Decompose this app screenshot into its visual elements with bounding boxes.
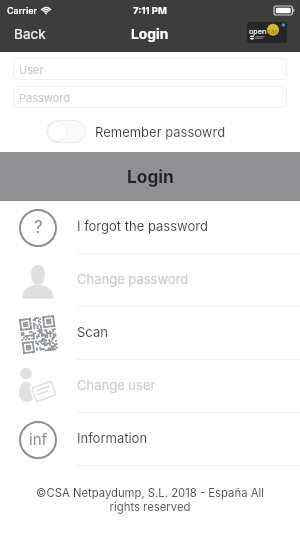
staticText: ©CSA Netpaydump, S.L. 2018 - España All … bbox=[33, 486, 267, 513]
button[interactable]: Change password bbox=[0, 254, 300, 307]
staticText: I forgot the password bbox=[77, 218, 208, 234]
button[interactable]: Back bbox=[0, 20, 56, 48]
staticText: open bbox=[249, 27, 267, 36]
staticText: Scan bbox=[77, 324, 108, 340]
button[interactable]: ? bbox=[0, 201, 300, 254]
staticText: ? bbox=[34, 217, 43, 238]
button[interactable]: Password bbox=[13, 86, 287, 108]
button[interactable]: inf bbox=[0, 413, 300, 466]
staticText: inf bbox=[29, 430, 48, 448]
staticText: Information bbox=[77, 430, 148, 446]
staticText: Password bbox=[19, 91, 70, 104]
button[interactable]: Remember password toggle bbox=[46, 120, 86, 143]
button[interactable]: Scan bbox=[0, 307, 300, 360]
staticText: User bbox=[19, 63, 44, 76]
staticText: Login bbox=[127, 166, 174, 187]
button[interactable]: Change user bbox=[0, 360, 300, 413]
staticText: Change password bbox=[77, 271, 189, 287]
staticText: bar bbox=[266, 27, 278, 36]
button[interactable]: Login bbox=[0, 152, 300, 201]
staticText: Login bbox=[131, 26, 169, 43]
button[interactable]: User bbox=[13, 58, 287, 80]
staticText: Remember passowrd bbox=[95, 124, 226, 140]
staticText: 7:11 PM bbox=[133, 5, 167, 16]
staticText: Change user bbox=[77, 377, 156, 393]
staticText: Carrier bbox=[7, 5, 37, 16]
button[interactable]: openbar logo bbox=[247, 22, 287, 43]
